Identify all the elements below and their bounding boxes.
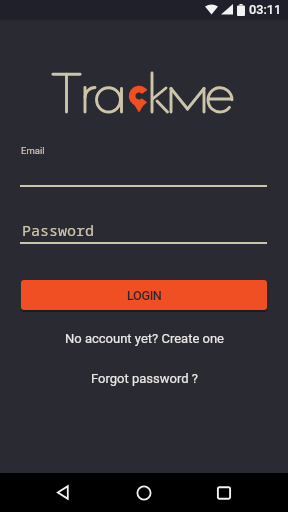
button[interactable]	[40, 473, 85, 512]
staticText: LOGIN	[127, 288, 162, 303]
button[interactable]	[121, 473, 167, 512]
staticText: No account yet? Create one	[65, 331, 224, 346]
button[interactable]: No account yet? Create one	[0, 328, 288, 348]
staticText: Email	[21, 145, 45, 156]
staticText: 03:11	[249, 2, 282, 17]
button[interactable]: Password	[18, 218, 269, 245]
staticText: Forgot password ?	[91, 371, 198, 386]
button[interactable]: Forgot password ?	[0, 368, 288, 388]
button[interactable]	[201, 473, 247, 512]
staticText: Password	[22, 220, 95, 240]
button[interactable]: Email	[18, 140, 269, 188]
button[interactable]: LOGIN	[21, 280, 267, 310]
